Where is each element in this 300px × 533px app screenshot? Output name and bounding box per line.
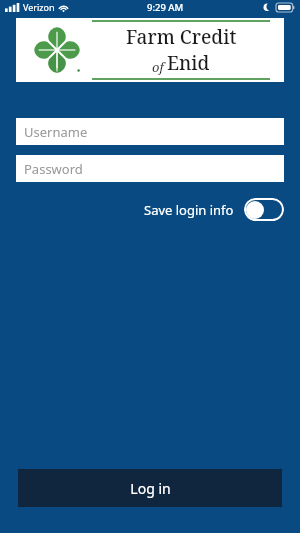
button[interactable]: Save login info (144, 194, 284, 225)
staticText: Verizon (23, 1, 55, 13)
button[interactable]: Password (16, 155, 284, 182)
staticText: Save login info (144, 201, 234, 219)
staticText: Farm Credit (126, 24, 237, 50)
button[interactable]: Username (16, 118, 284, 145)
staticText: 9:29 AM (147, 1, 184, 14)
staticText: of (152, 58, 167, 76)
staticText: Username (24, 123, 88, 141)
staticText: Log in (130, 479, 171, 498)
button[interactable]: Save login info toggle (244, 198, 284, 221)
button[interactable]: Log in (18, 469, 282, 507)
staticText: Enid (167, 50, 210, 76)
staticText: Password (24, 160, 83, 178)
